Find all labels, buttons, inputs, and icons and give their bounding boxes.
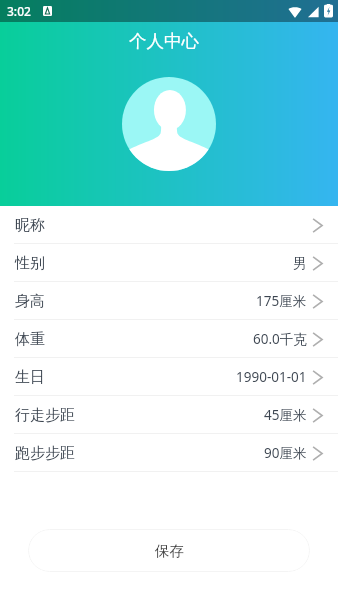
button[interactable]: 性别: [0, 244, 338, 282]
staticText: 行走步距: [15, 406, 75, 425]
staticText: 175厘米: [256, 292, 307, 310]
button[interactable]: 保存: [28, 529, 310, 572]
staticText: 体重: [15, 330, 45, 349]
staticText: 45厘米: [264, 406, 307, 424]
staticText: 身高: [15, 292, 45, 311]
staticText: 男: [293, 255, 307, 272]
staticText: 90厘米: [264, 444, 307, 462]
staticText: 生日: [15, 368, 45, 387]
button[interactable]: 昵称: [0, 206, 338, 244]
staticText: 3:02: [7, 3, 31, 19]
staticText: 保存: [155, 542, 184, 560]
button[interactable]: 体重: [0, 320, 338, 358]
staticText: 个人中心: [129, 30, 199, 52]
staticText: 跑步步距: [15, 444, 75, 463]
button[interactable]: 行走步距: [0, 396, 338, 434]
button[interactable]: 身高: [0, 282, 338, 320]
button[interactable]: 生日: [0, 358, 338, 396]
staticText: 1990-01-01: [236, 368, 307, 386]
button[interactable]: 跑步步距: [0, 434, 338, 472]
button[interactable]: Change avatar: [122, 77, 216, 171]
staticText: 性别: [15, 254, 45, 273]
staticText: 60.0千克: [253, 330, 307, 348]
staticText: 昵称: [15, 216, 45, 235]
